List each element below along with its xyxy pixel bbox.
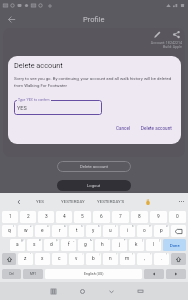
- button[interactable]: Shift: [171, 253, 186, 265]
- staticText: .: [161, 256, 163, 262]
- staticText: x: [41, 256, 44, 262]
- button[interactable]: Delete account: [137, 124, 176, 133]
- staticText: *: [30, 253, 32, 256]
- button[interactable]: 3: [38, 211, 54, 223]
- button[interactable]: e: [35, 225, 50, 237]
- staticText: y: [92, 228, 95, 234]
- button[interactable]: q: [2, 225, 16, 237]
- button[interactable]: b: [86, 253, 101, 265]
- staticText: Type 'YES' to confirm: [18, 98, 50, 102]
- button[interactable]: English (US): [45, 269, 142, 279]
- button[interactable]: z: [18, 253, 33, 265]
- button[interactable]: Recent apps: [46, 284, 60, 298]
- button[interactable]: Move cursor left: [144, 269, 164, 279]
- button[interactable]: 2: [20, 211, 36, 223]
- button[interactable]: u: [103, 225, 118, 237]
- button[interactable]: YESTERDAY'S: [95, 197, 127, 206]
- button[interactable]: 7: [112, 211, 129, 223]
- staticText: h: [101, 242, 104, 248]
- staticText: -: [108, 239, 109, 242]
- button[interactable]: YES: [34, 197, 46, 206]
- button[interactable]: t: [69, 225, 84, 237]
- button[interactable]: MF1: [23, 269, 43, 279]
- button[interactable]: g: [78, 239, 93, 251]
- staticText: 9: [157, 214, 160, 220]
- staticText: s: [33, 242, 36, 248]
- button[interactable]: Move cursor right: [166, 269, 186, 279]
- staticText: f: [68, 242, 70, 248]
- button[interactable]: Shift: [2, 253, 16, 265]
- staticText: Build: Apple: [0, 45, 182, 49]
- button[interactable]: YES: [14, 100, 102, 115]
- staticText: 4: [63, 214, 66, 220]
- button[interactable]: Edit: [151, 28, 163, 40]
- button[interactable]: 9: [150, 211, 167, 223]
- button[interactable]: o: [137, 225, 152, 237]
- button[interactable]: a: [10, 239, 25, 251]
- button[interactable]: p: [154, 225, 169, 237]
- button[interactable]: 5: [74, 211, 91, 223]
- button[interactable]: w: [18, 225, 33, 237]
- button[interactable]: 1: [2, 211, 18, 223]
- button[interactable]: s: [27, 239, 42, 251]
- staticText: #: [39, 239, 41, 242]
- button[interactable]: 8: [131, 211, 148, 223]
- staticText: $: [56, 239, 58, 242]
- button[interactable]: 6: [93, 211, 110, 223]
- button[interactable]: Cancel: [112, 124, 135, 133]
- button[interactable]: v: [69, 253, 84, 265]
- button[interactable]: Done: [163, 239, 186, 251]
- button[interactable]: Hide keyboard: [133, 284, 147, 298]
- staticText: 3: [45, 214, 48, 220]
- button[interactable]: c: [52, 253, 67, 265]
- button[interactable]: Home: [75, 284, 89, 298]
- staticText: 3: [47, 225, 49, 228]
- button[interactable]: x: [35, 253, 50, 265]
- button[interactable]: Back: [4, 12, 18, 26]
- staticText: 6: [100, 214, 103, 220]
- staticText: 0: [176, 214, 179, 220]
- button[interactable]: Back: [104, 284, 118, 298]
- button[interactable]: h: [95, 239, 110, 251]
- staticText: 7: [119, 214, 122, 220]
- button[interactable]: d: [44, 239, 59, 251]
- button[interactable]: m: [120, 253, 135, 265]
- staticText: Cancel: [116, 126, 131, 131]
- button[interactable]: y: [86, 225, 101, 237]
- button[interactable]: n: [103, 253, 118, 265]
- button[interactable]: k: [129, 239, 144, 251]
- staticText: q: [8, 228, 11, 234]
- staticText: a: [16, 242, 19, 248]
- staticText: i: [127, 228, 129, 234]
- button[interactable]: ,: [137, 253, 152, 265]
- staticText: t: [76, 228, 78, 234]
- button[interactable]: Backspace: [171, 225, 186, 237]
- button[interactable]: 0: [169, 211, 186, 223]
- button[interactable]: Share: [170, 28, 182, 40]
- button[interactable]: More options: [176, 196, 187, 207]
- button[interactable]: i: [120, 225, 135, 237]
- staticText: Ctrl: [9, 272, 14, 276]
- staticText: !: [150, 253, 151, 256]
- button[interactable]: Ctrl: [2, 269, 21, 279]
- button[interactable]: Logout: [57, 180, 131, 191]
- button[interactable]: 4: [56, 211, 72, 223]
- staticText: 5: [81, 225, 83, 228]
- button[interactable]: l: [146, 239, 161, 251]
- staticText: j: [119, 242, 121, 248]
- staticText: YESTERDAY: [61, 199, 85, 204]
- button[interactable]: .: [154, 253, 169, 265]
- button[interactable]: YESTERDAY: [59, 197, 87, 206]
- staticText: &: [90, 239, 92, 242]
- button[interactable]: f: [61, 239, 76, 251]
- staticText: 9: [149, 225, 151, 228]
- button[interactable]: Delete account: [57, 161, 131, 172]
- staticText: p: [160, 228, 163, 234]
- staticText: b: [92, 256, 95, 262]
- staticText: d: [50, 242, 53, 248]
- staticText: Delete account: [80, 164, 108, 169]
- button[interactable]: j: [112, 239, 127, 251]
- button[interactable]: r: [52, 225, 67, 237]
- button[interactable]: Previous suggestions: [14, 197, 23, 206]
